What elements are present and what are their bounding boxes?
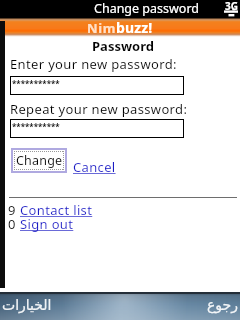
- button[interactable]: 0: [8, 215, 74, 233]
- button[interactable]: Change: [11, 148, 67, 173]
- staticText: Enter your new password:: [10, 55, 177, 73]
- staticText: Change: [16, 152, 63, 169]
- other: Signal strength: [224, 9, 238, 17]
- staticText: buzz!: [116, 18, 153, 37]
- button[interactable]: الخيارات: [2, 297, 52, 313]
- button[interactable]: رجوع: [207, 297, 239, 313]
- staticText: Repeat your new password:: [10, 100, 188, 118]
- staticText: ***********: [12, 78, 60, 89]
- staticText: Contact list: [20, 201, 93, 219]
- staticText: 3G: [225, 0, 238, 13]
- button[interactable]: Cancel: [73, 158, 116, 176]
- staticText: Password: [6, 37, 240, 55]
- staticText: Nim: [87, 19, 116, 37]
- staticText: 0: [8, 215, 20, 233]
- staticText: Change password: [94, 0, 200, 17]
- button[interactable]: 9: [8, 201, 93, 219]
- button[interactable]: Password entry field: [10, 119, 184, 138]
- staticText: 9: [8, 201, 20, 219]
- staticText: Sign out: [20, 215, 74, 233]
- button[interactable]: Nim: [87, 18, 153, 37]
- button[interactable]: Password entry field: [10, 76, 184, 95]
- staticText: ***********: [12, 121, 60, 132]
